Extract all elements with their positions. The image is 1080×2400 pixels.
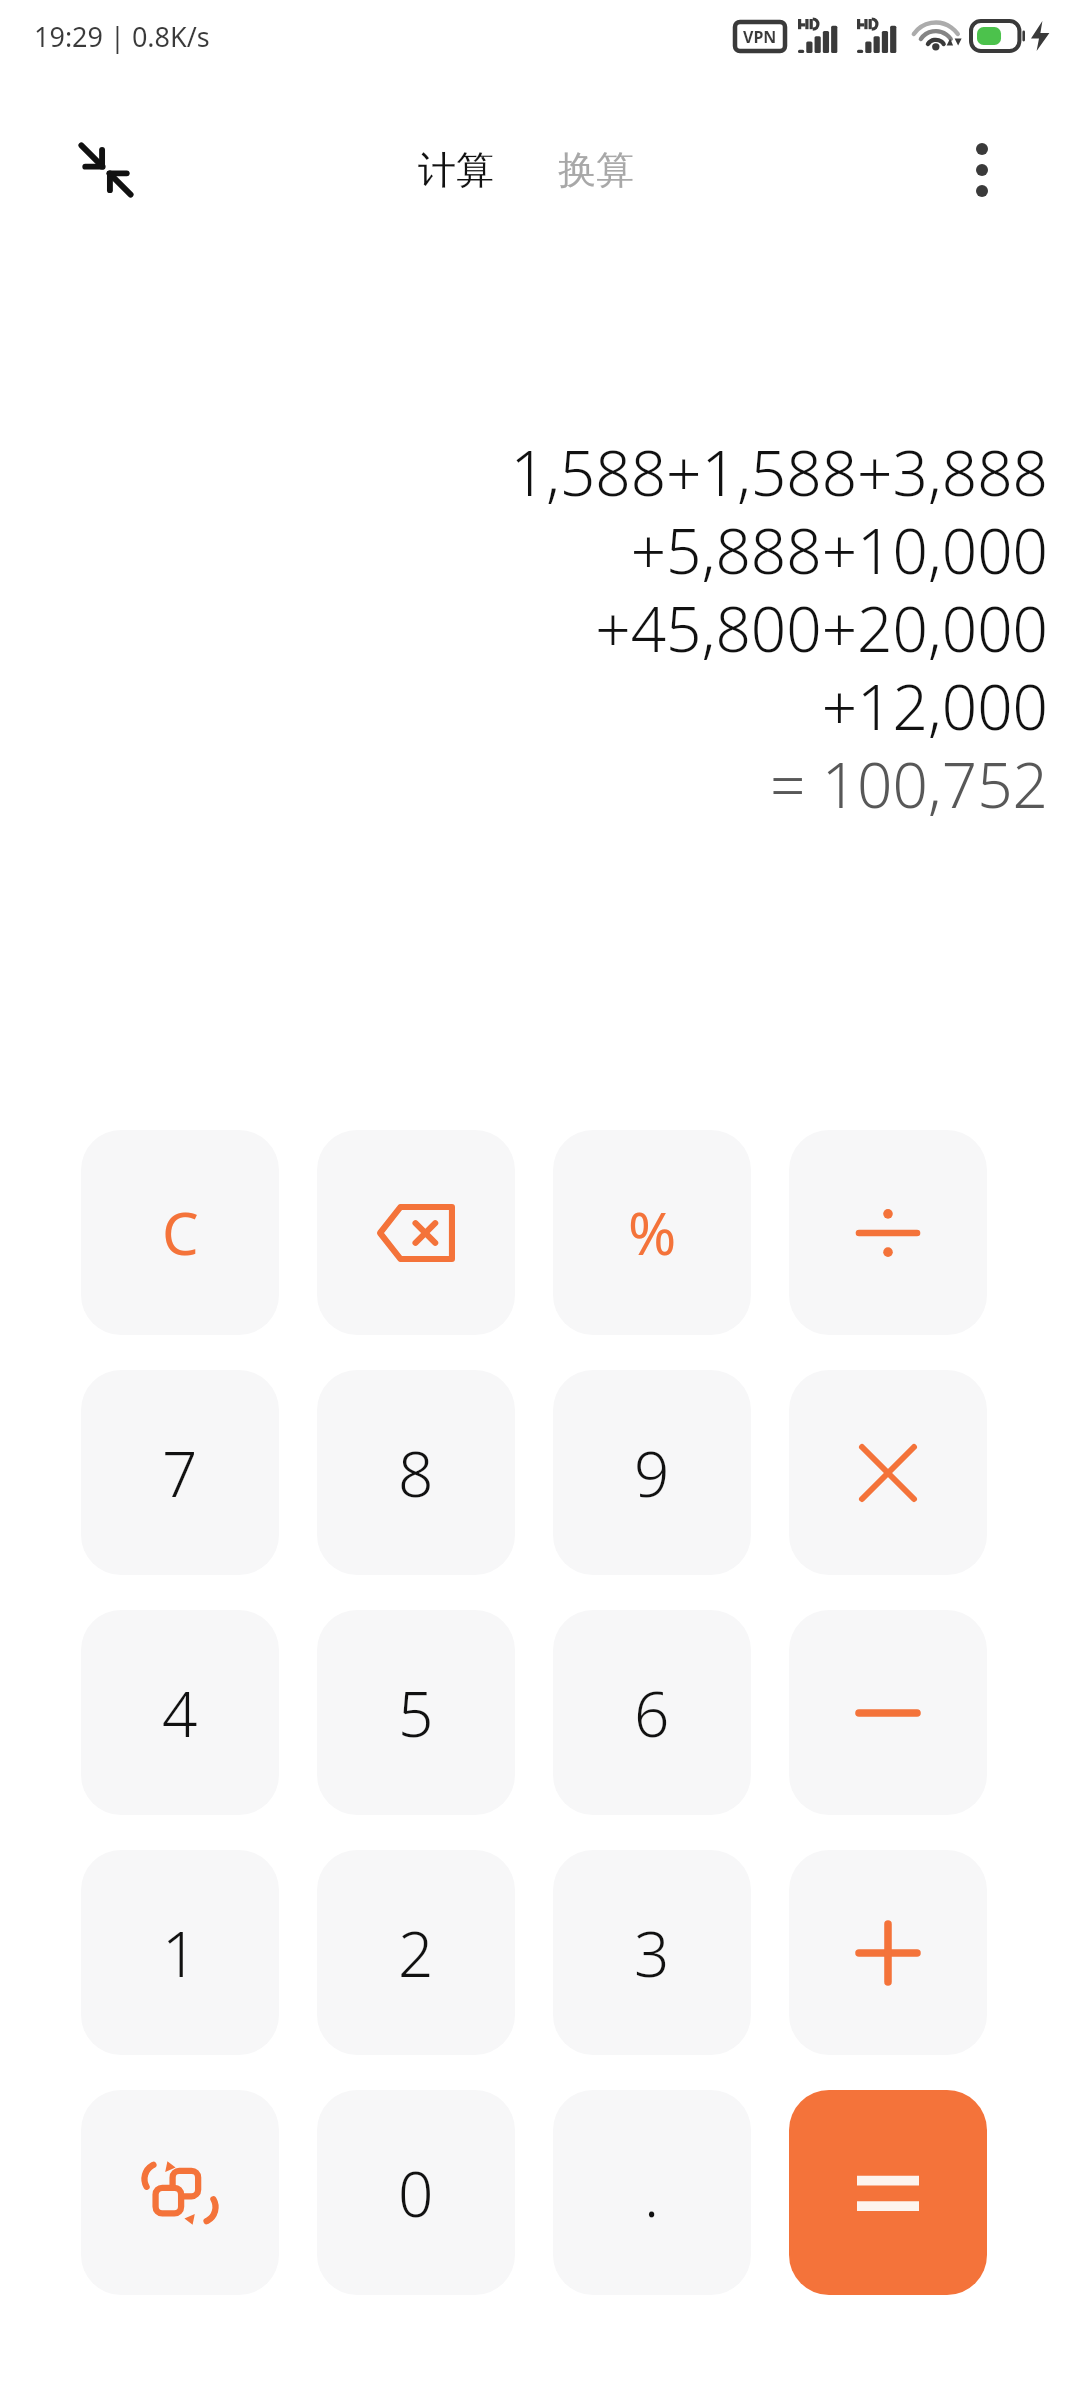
button[interactable]: Equals xyxy=(789,2090,987,2295)
button[interactable]: 2 xyxy=(317,1850,515,2055)
button[interactable]: Plus xyxy=(789,1850,987,2055)
button[interactable]: Percent xyxy=(553,1130,751,1335)
staticText: +12,000 xyxy=(821,664,1048,742)
button[interactable]: 3 xyxy=(553,1850,751,2055)
button[interactable]: Backspace xyxy=(317,1130,515,1335)
button[interactable]: Minus xyxy=(789,1610,987,1815)
button[interactable]: 计算 xyxy=(404,136,508,204)
staticText: 9 xyxy=(634,1431,670,1515)
staticText: 6 xyxy=(634,1671,670,1755)
button[interactable]: Divide xyxy=(789,1130,987,1335)
staticText: 5 xyxy=(398,1671,434,1755)
staticText: 计算 xyxy=(418,146,494,194)
staticText: 1 xyxy=(162,1911,198,1995)
staticText: 7 xyxy=(162,1431,198,1515)
staticText: +5,888+10,000 xyxy=(630,508,1048,586)
staticText: 1,588+1,588+3,888 xyxy=(510,430,1048,508)
button[interactable]: 9 xyxy=(553,1370,751,1575)
staticText: 2 xyxy=(398,1911,434,1995)
button[interactable]: More options xyxy=(940,128,1024,212)
staticText: VPN xyxy=(743,26,777,48)
button[interactable]: 4 xyxy=(81,1610,279,1815)
button[interactable]: Decimal point xyxy=(553,2090,751,2295)
button[interactable]: 1 xyxy=(81,1850,279,2055)
button[interactable]: Clear xyxy=(81,1130,279,1335)
staticText: C xyxy=(162,1193,199,1272)
button[interactable]: 5 xyxy=(317,1610,515,1815)
button[interactable]: 7 xyxy=(81,1370,279,1575)
button[interactable]: 6 xyxy=(553,1610,751,1815)
button[interactable]: Multiply xyxy=(789,1370,987,1575)
staticText: 0 xyxy=(398,2151,434,2235)
button[interactable]: Collapse xyxy=(60,124,152,216)
staticText: 换算 xyxy=(558,146,634,194)
staticText: = 100,752 xyxy=(770,742,1048,820)
staticText: 19:29 | 0.8K/s xyxy=(34,18,210,55)
staticText: +45,800+20,000 xyxy=(595,586,1048,664)
staticText: 3 xyxy=(634,1911,670,1995)
staticText: . xyxy=(644,2151,660,2235)
button[interactable]: 0 xyxy=(317,2090,515,2295)
staticText: % xyxy=(628,1193,677,1272)
staticText: 8 xyxy=(398,1431,434,1515)
button[interactable]: 换算 xyxy=(544,136,648,204)
staticText: 4 xyxy=(162,1671,198,1755)
button[interactable]: Convert xyxy=(81,2090,279,2295)
button[interactable]: 8 xyxy=(317,1370,515,1575)
